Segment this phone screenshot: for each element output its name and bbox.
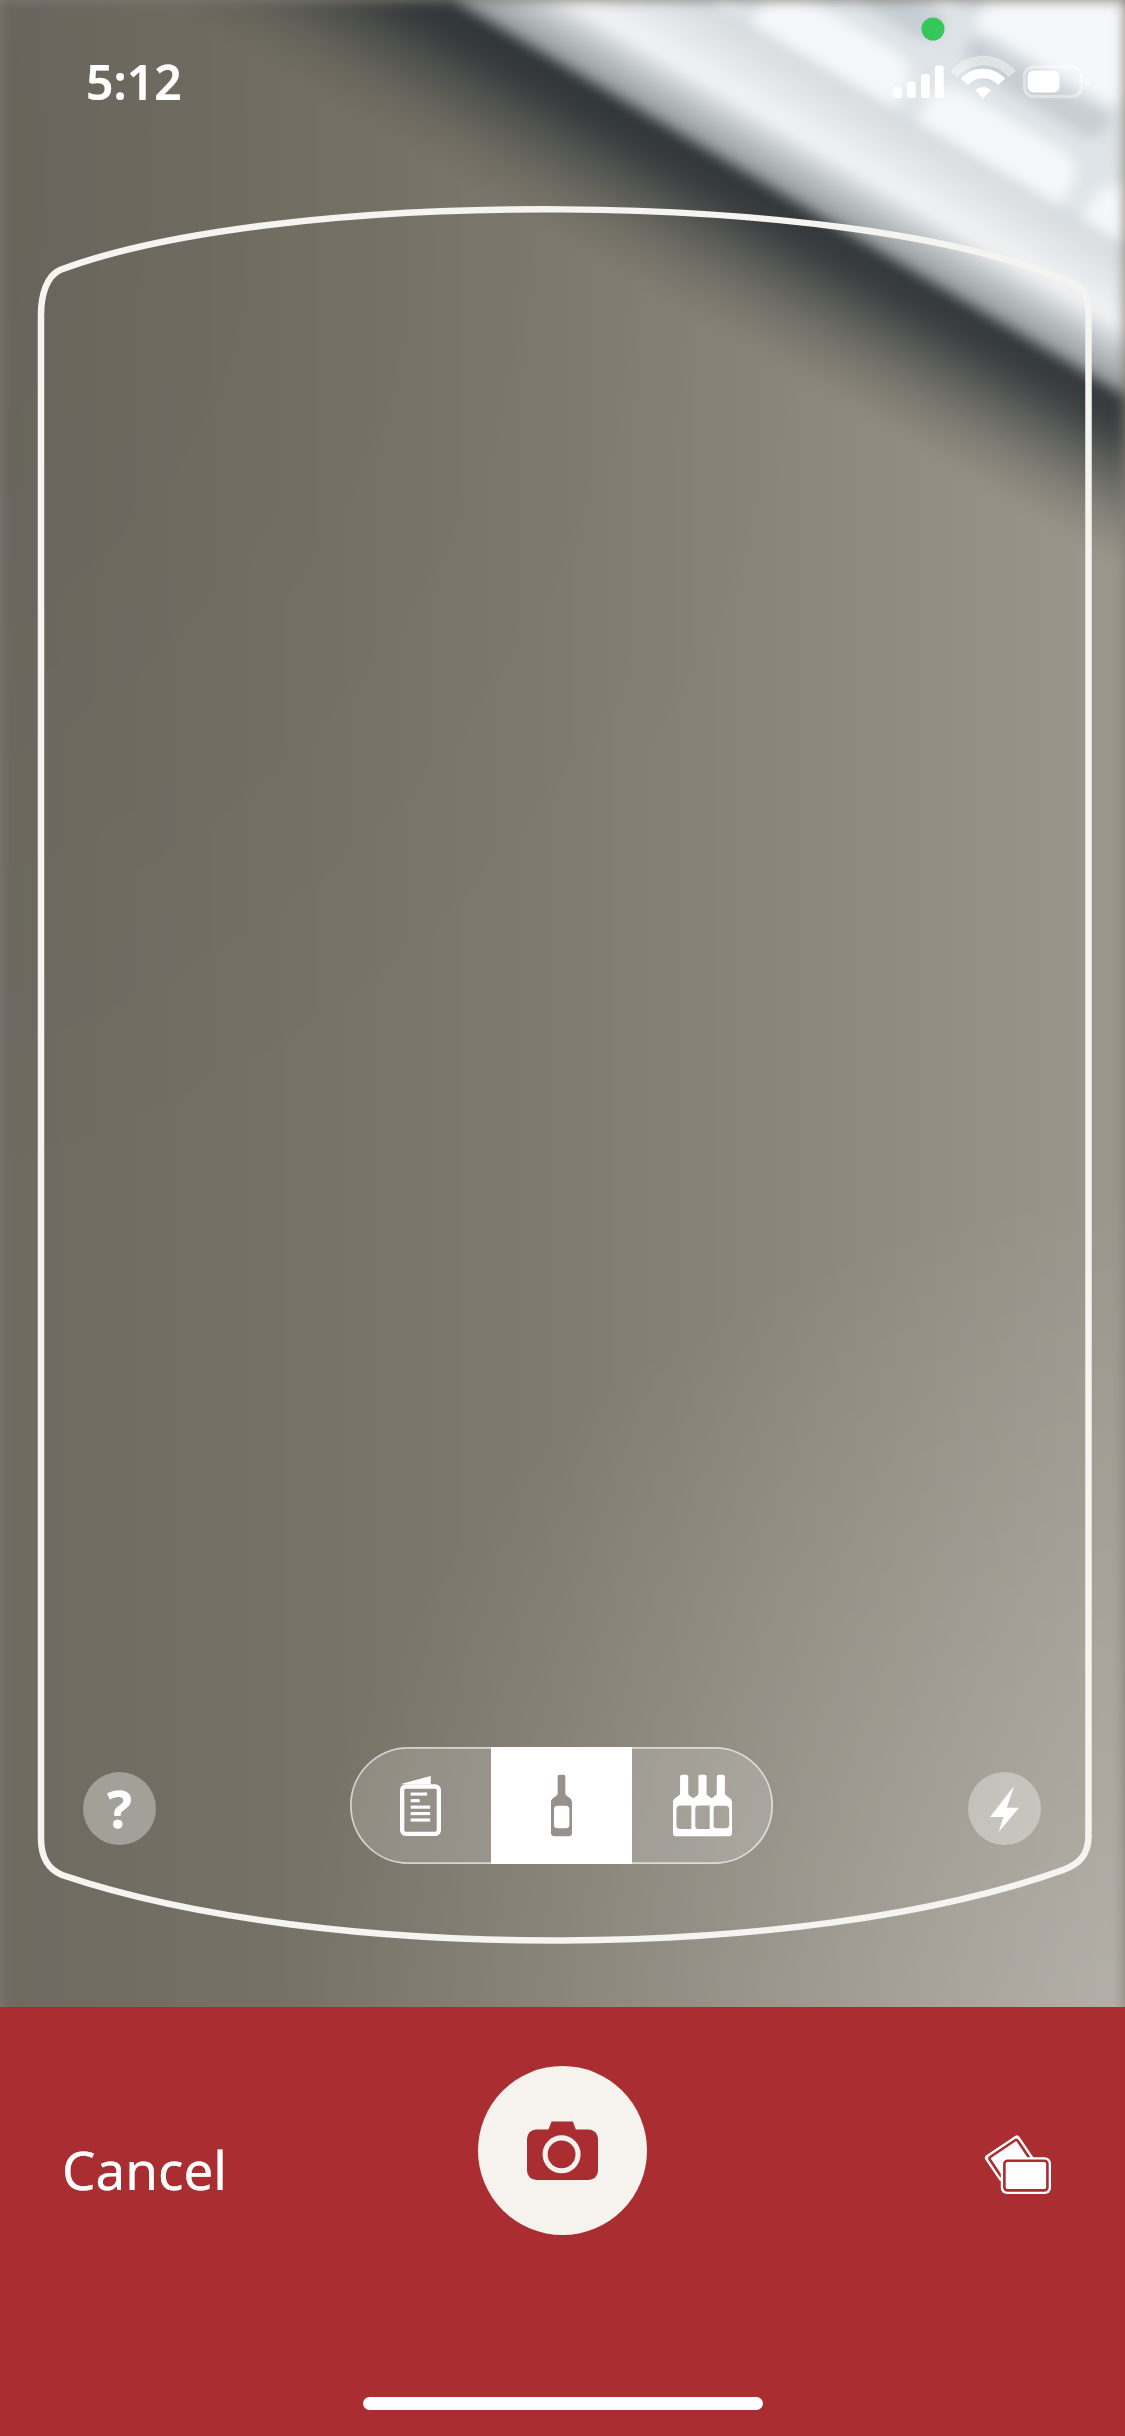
staticText: 5:12 — [86, 49, 182, 114]
button[interactable]: Take picture — [478, 2066, 647, 2235]
button[interactable]: Scan wine list — [350, 1747, 491, 1864]
staticText: Cancel — [62, 2133, 227, 2205]
staticText: ? — [107, 1772, 132, 1843]
button[interactable]: Help — [83, 1772, 156, 1845]
button[interactable]: Open gallery — [958, 2103, 1082, 2227]
button[interactable]: Flash — [968, 1772, 1041, 1845]
button[interactable]: Scan wine label — [491, 1747, 632, 1864]
button[interactable]: Scan multiple wines — [632, 1747, 773, 1864]
button[interactable]: Cancel — [40, 2113, 249, 2225]
